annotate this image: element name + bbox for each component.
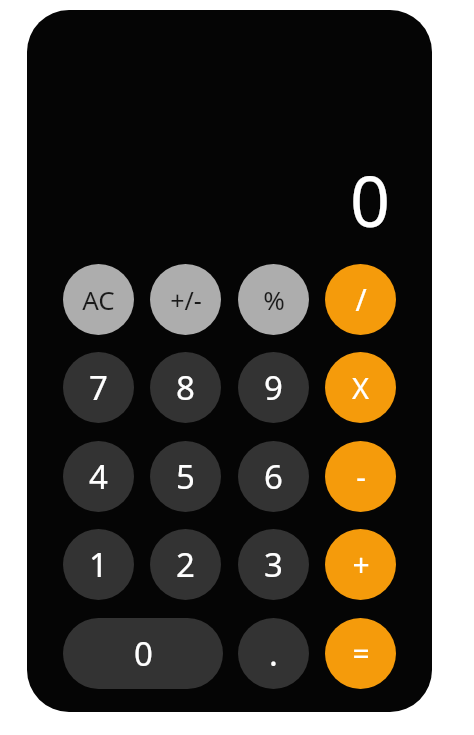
button[interactable]: Equals (325, 618, 396, 689)
staticText: 7 (89, 365, 108, 410)
staticText: 1 (89, 542, 108, 587)
staticText: % (263, 282, 285, 317)
button[interactable]: Plus (325, 529, 396, 600)
staticText: 0 (349, 152, 390, 232)
button[interactable]: 7 (63, 352, 134, 423)
button[interactable]: AC (63, 264, 134, 335)
button[interactable]: 6 (238, 441, 309, 512)
button[interactable]: 2 (150, 529, 221, 600)
staticText: 0 (134, 631, 153, 676)
staticText: = (352, 633, 370, 674)
staticText: +/- (170, 283, 202, 317)
staticText: X (352, 368, 369, 407)
button[interactable]: 9 (238, 352, 309, 423)
staticText: + (352, 544, 370, 585)
staticText: . (269, 631, 278, 676)
staticText: 6 (264, 454, 283, 499)
button[interactable]: 3 (238, 529, 309, 600)
button[interactable]: Divide (325, 264, 396, 335)
button[interactable]: 4 (63, 441, 134, 512)
staticText: / (355, 279, 367, 320)
staticText: 2 (176, 542, 195, 587)
button[interactable]: Decimal point (238, 618, 309, 689)
staticText: AC (82, 282, 115, 317)
button[interactable]: Minus (325, 441, 396, 512)
button[interactable]: Multiply (325, 352, 396, 423)
staticText: 5 (176, 454, 195, 499)
staticText: - (356, 456, 366, 497)
button[interactable]: 1 (63, 529, 134, 600)
button[interactable]: 0 (63, 618, 223, 689)
button[interactable]: 8 (150, 352, 221, 423)
staticText: 8 (176, 365, 195, 410)
button[interactable]: +/- (150, 264, 221, 335)
button[interactable]: % (238, 264, 309, 335)
staticText: 3 (264, 542, 283, 587)
staticText: 9 (264, 365, 283, 410)
button[interactable]: 5 (150, 441, 221, 512)
staticText: 4 (89, 454, 108, 499)
